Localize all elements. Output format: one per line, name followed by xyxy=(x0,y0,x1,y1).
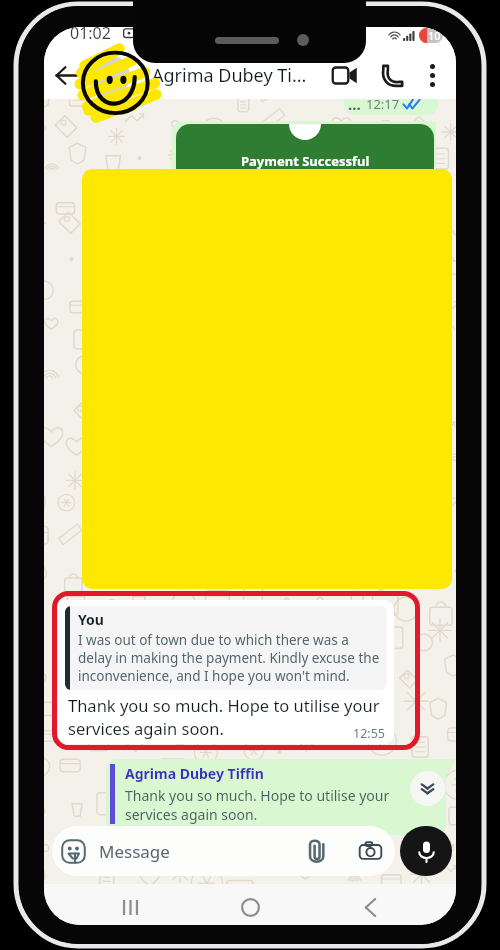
staticText: Message xyxy=(99,840,170,863)
staticText: ... xyxy=(348,99,361,114)
staticText: You xyxy=(78,610,104,629)
button[interactable]: Message xyxy=(52,826,395,876)
staticText: Agrima Dubey Ti... xyxy=(152,63,307,88)
staticText: I was out of town due to which there was… xyxy=(78,631,381,685)
staticText: 01:02 xyxy=(70,27,111,44)
staticText: Thank you so much. Hope to utilise your … xyxy=(68,694,384,740)
button[interactable]: Back xyxy=(310,890,430,925)
button[interactable]: Voice message xyxy=(400,826,452,876)
staticText: 12:17 xyxy=(366,99,400,113)
button[interactable]: Scroll to bottom xyxy=(410,771,445,806)
staticText: Payment Successful xyxy=(241,152,370,170)
staticText: 12:55 xyxy=(353,725,385,742)
button[interactable]: Home xyxy=(190,890,310,925)
staticText: Agrima Dubey Tiffin xyxy=(125,764,264,783)
staticText: Thank you so much. Hope to utilise your … xyxy=(125,786,440,824)
button[interactable]: Back xyxy=(44,52,88,99)
button[interactable]: Recent apps xyxy=(70,890,190,925)
button[interactable]: Attach xyxy=(299,834,333,868)
staticText: 10 xyxy=(428,28,441,43)
button[interactable]: You xyxy=(58,600,394,744)
button[interactable]: More options xyxy=(414,52,450,99)
button[interactable]: Call xyxy=(370,52,414,99)
button[interactable]: Agrima Dubey Tiffin xyxy=(106,759,446,835)
button[interactable]: Camera xyxy=(353,834,387,868)
button[interactable]: Video call xyxy=(318,52,370,99)
